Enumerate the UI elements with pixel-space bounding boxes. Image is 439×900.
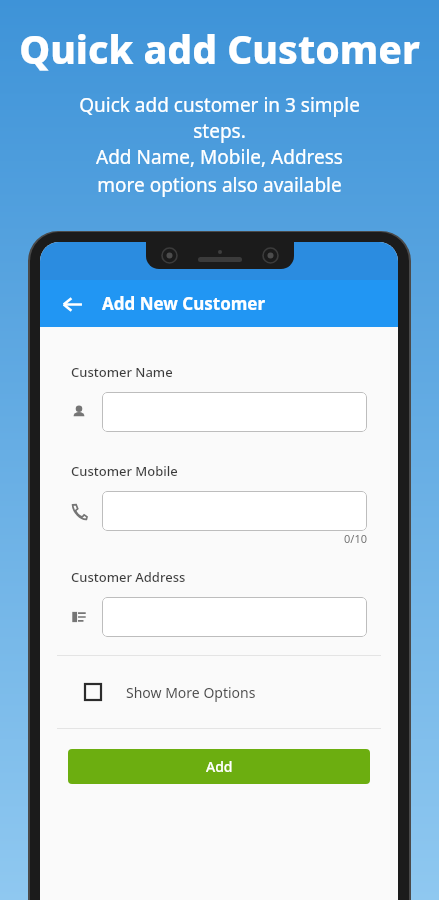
button[interactable] <box>102 491 367 531</box>
button[interactable]: Add <box>68 749 370 784</box>
staticText: Add <box>206 757 233 776</box>
staticText: 0/10 <box>344 531 367 546</box>
staticText: Customer Address <box>71 568 186 586</box>
button[interactable]: Back <box>52 284 92 324</box>
staticText: Customer Mobile <box>71 462 178 480</box>
staticText: Add New Customer <box>102 292 266 315</box>
staticText: Add Name, Mobile, Address more options a… <box>0 144 439 198</box>
staticText: Quick add Customer <box>19 22 420 75</box>
button[interactable] <box>102 597 367 637</box>
staticText: Show More Options <box>126 683 256 702</box>
staticText: Customer Name <box>71 363 173 381</box>
button[interactable] <box>102 392 367 432</box>
button[interactable]: Show More Options <box>40 656 398 728</box>
staticText: Quick add customer in 3 simple steps. <box>0 92 439 144</box>
